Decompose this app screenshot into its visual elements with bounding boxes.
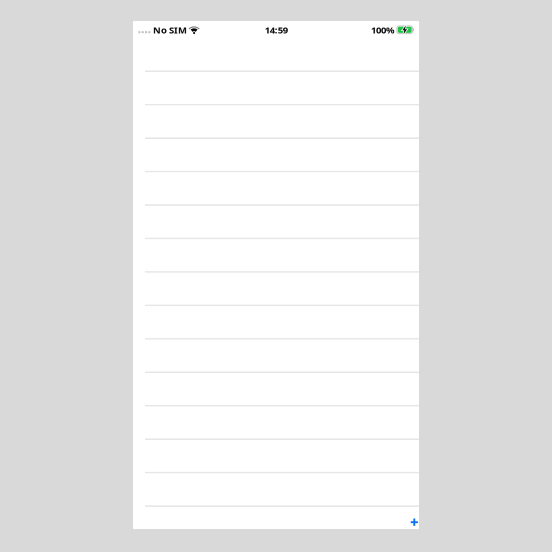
staticText: 14:59 (265, 23, 288, 36)
button[interactable]: Empty row (133, 373, 419, 407)
button[interactable]: Empty row (133, 306, 419, 340)
button[interactable]: Empty row (133, 473, 419, 507)
button[interactable]: Empty row (133, 72, 419, 106)
button[interactable]: Empty row (133, 239, 419, 273)
button[interactable]: Empty row (133, 273, 419, 306)
button[interactable]: Empty row (133, 340, 419, 373)
button[interactable]: Compose (407, 515, 421, 529)
button[interactable]: Empty row (133, 106, 419, 139)
button[interactable]: Empty row (133, 206, 419, 239)
staticText: 100% (371, 23, 395, 36)
staticText: No SIM (153, 23, 187, 36)
button[interactable]: Empty row (133, 407, 419, 440)
button[interactable]: Empty row (133, 440, 419, 473)
button[interactable]: Empty row (133, 139, 419, 172)
button[interactable]: Empty row (133, 21, 419, 72)
button[interactable]: Empty row (133, 172, 419, 206)
